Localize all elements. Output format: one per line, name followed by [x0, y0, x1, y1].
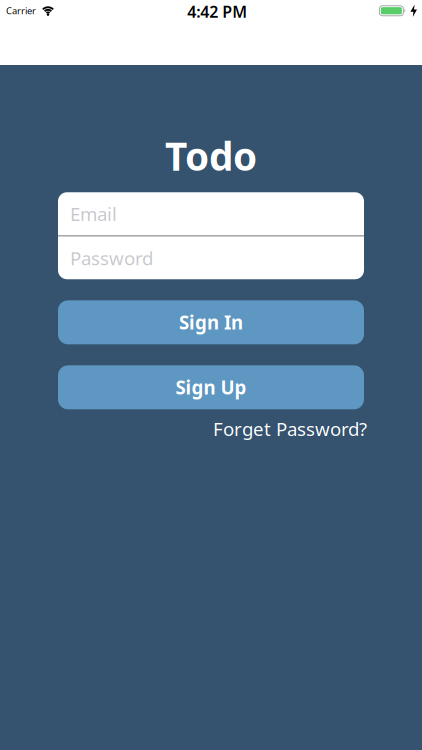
button[interactable]: Password [58, 236, 364, 279]
staticText: Email [70, 201, 117, 226]
staticText: Carrier [6, 5, 36, 17]
button[interactable]: Forget Password? [213, 416, 367, 441]
button[interactable]: Email [58, 192, 364, 235]
button[interactable]: Sign In [58, 300, 364, 344]
staticText: 4:42 PM [187, 1, 247, 22]
staticText: Forget Password? [213, 416, 367, 441]
staticText: Password [70, 246, 153, 270]
staticText: Todo [165, 130, 257, 181]
button[interactable]: Sign Up [58, 365, 364, 409]
staticText: Sign In [179, 310, 243, 335]
staticText: Sign Up [175, 375, 246, 400]
